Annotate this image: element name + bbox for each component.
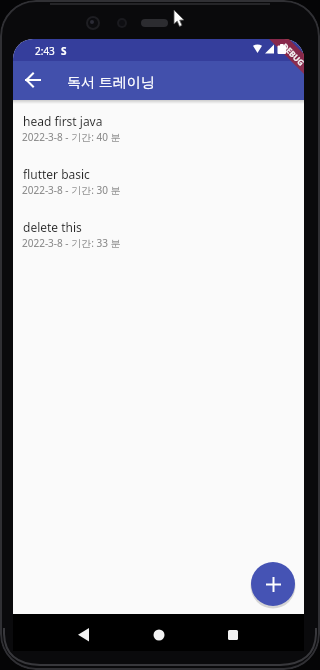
staticText: 2:43: [35, 44, 55, 58]
staticText: DEBUG: [280, 41, 304, 68]
button[interactable]: delete this: [13, 210, 304, 263]
staticText: flutter basic: [23, 166, 90, 182]
staticText: 2022-3-8 - 기간: 33 분: [22, 236, 121, 250]
button[interactable]: head first java: [13, 104, 304, 157]
button[interactable]: [251, 562, 295, 606]
staticText: head first java: [23, 113, 103, 129]
staticText: 2022-3-8 - 기간: 30 분: [22, 183, 121, 197]
button[interactable]: [146, 622, 172, 648]
staticText: S: [61, 44, 67, 58]
staticText: delete this: [23, 219, 82, 235]
button[interactable]: [71, 622, 97, 648]
button[interactable]: flutter basic: [13, 157, 304, 210]
staticText: 2022-3-8 - 기간: 40 분: [22, 130, 121, 144]
staticText: 독서 트레이닝: [67, 72, 155, 91]
button[interactable]: [19, 66, 47, 94]
button[interactable]: [220, 622, 246, 648]
